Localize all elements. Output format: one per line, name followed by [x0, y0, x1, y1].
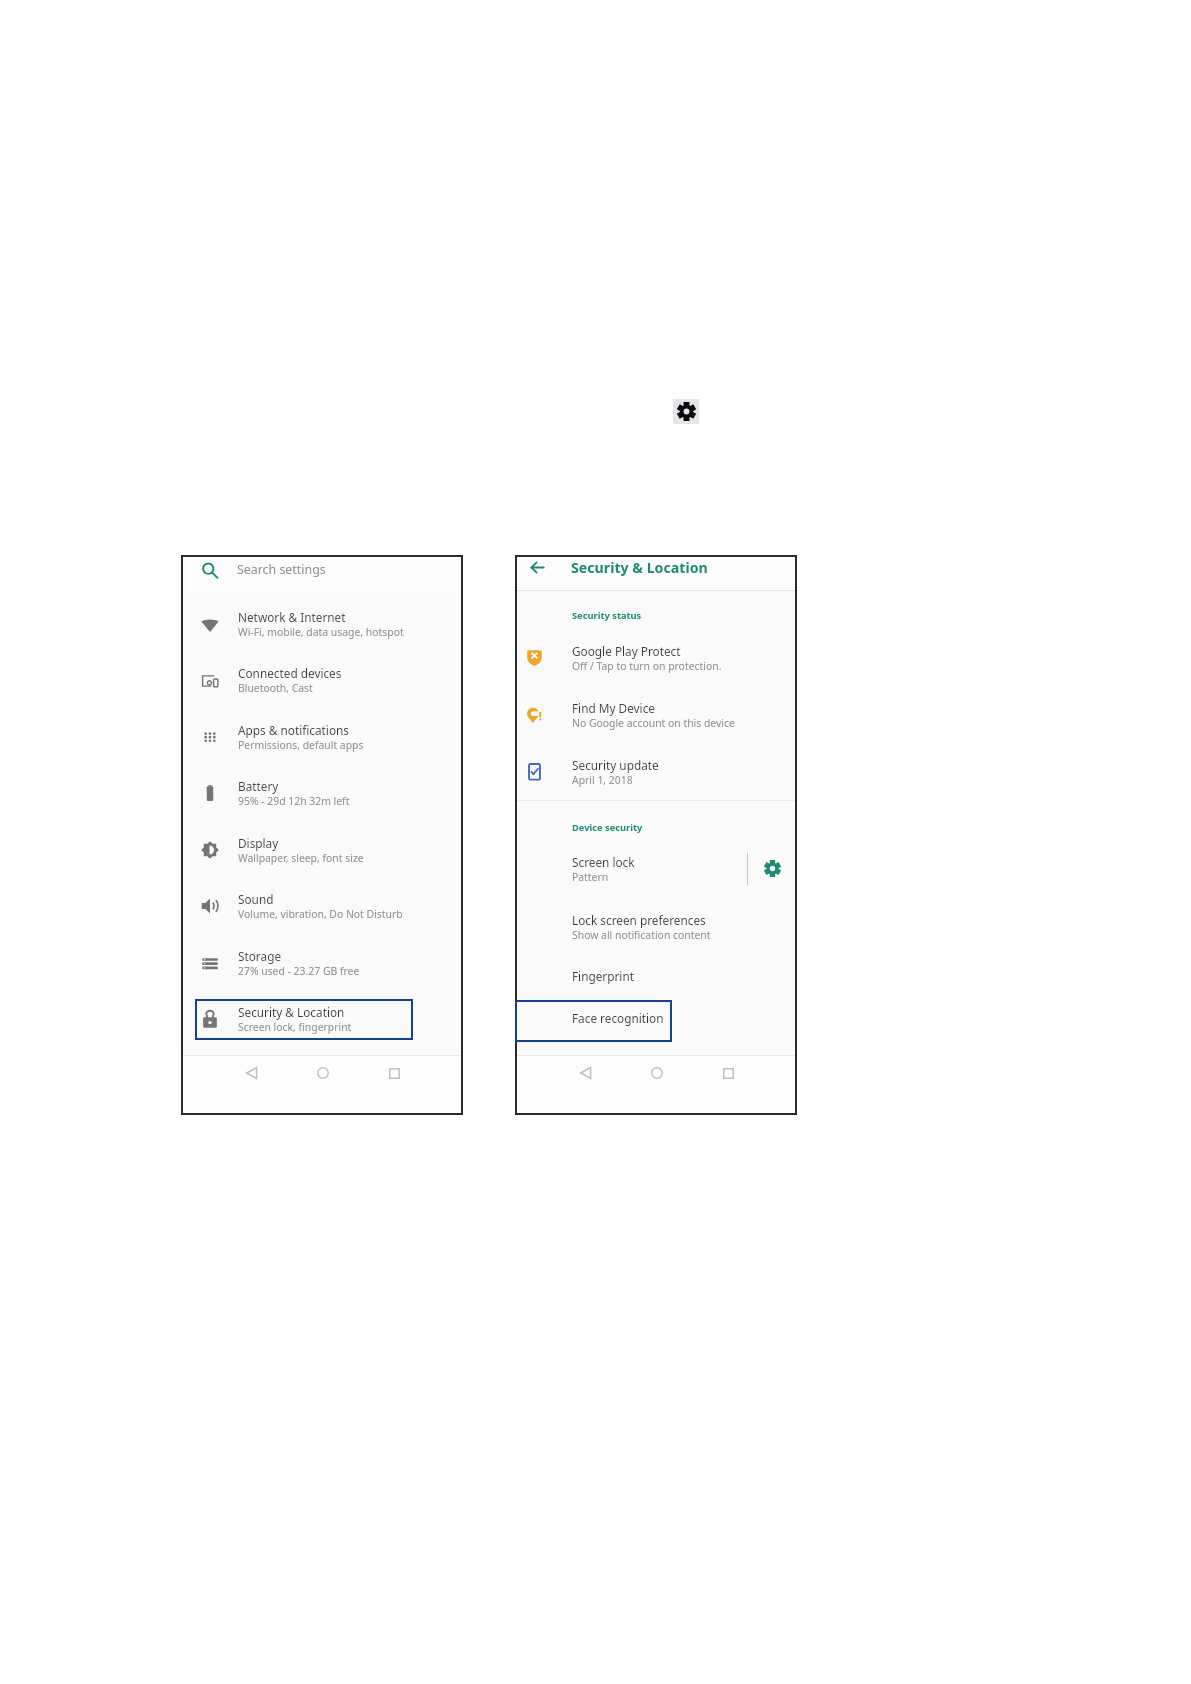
button[interactable]: Security update: [515, 743, 797, 800]
button[interactable]: Face recognition: [515, 996, 797, 1039]
button[interactable]: Settings: [673, 399, 699, 424]
button[interactable]: Screen lock settings: [748, 840, 797, 897]
button[interactable]: Home: [310, 1060, 336, 1086]
staticText: Pattern: [572, 870, 609, 884]
staticText: Fingerprint: [572, 968, 634, 984]
staticText: Security & Location: [571, 558, 708, 577]
staticText: Find My Device: [572, 700, 655, 716]
staticText: Screen lock, fingerprint: [238, 1020, 352, 1034]
staticText: Security & Location: [238, 1004, 345, 1020]
button[interactable]: Home: [644, 1060, 670, 1086]
button[interactable]: Screen lock: [515, 840, 747, 897]
staticText: Volume, vibration, Do Not Disturb: [238, 907, 403, 921]
button[interactable]: Apps & notifications: [181, 708, 463, 765]
staticText: Screen lock: [572, 854, 635, 870]
button[interactable]: Recents: [715, 1060, 741, 1086]
button[interactable]: Find My Device: [515, 686, 797, 743]
staticText: Security status: [572, 609, 642, 622]
staticText: Search settings: [237, 561, 326, 578]
button[interactable]: Search settings: [188, 555, 456, 591]
staticText: Storage: [238, 948, 282, 964]
button[interactable]: Recents: [381, 1060, 407, 1086]
staticText: Permissions, default apps: [238, 738, 364, 752]
staticText: 27% used - 23.27 GB free: [238, 964, 360, 978]
staticText: Network & Internet: [238, 609, 346, 625]
staticText: Off / Tap to turn on protection.: [572, 659, 722, 673]
button[interactable]: Security & Location: [181, 990, 463, 1047]
button[interactable]: Display: [181, 821, 463, 878]
button[interactable]: Back: [515, 555, 559, 580]
button[interactable]: Battery: [181, 764, 463, 821]
staticText: April 1, 2018: [572, 773, 633, 787]
button[interactable]: Sound: [181, 877, 463, 934]
staticText: Security update: [572, 757, 659, 773]
staticText: Bluetooth, Cast: [238, 681, 313, 695]
staticText: No Google account on this device: [572, 716, 735, 730]
staticText: Connected devices: [238, 665, 342, 681]
staticText: Display: [238, 835, 279, 851]
staticText: Face recognition: [572, 1010, 664, 1026]
button[interactable]: Connected devices: [181, 651, 463, 708]
staticText: Sound: [238, 891, 274, 907]
button[interactable]: Storage: [181, 934, 463, 991]
button[interactable]: Lock screen preferences: [515, 898, 797, 955]
staticText: Lock screen preferences: [572, 912, 706, 928]
staticText: Google Play Protect: [572, 643, 681, 659]
button[interactable]: Back: [573, 1060, 599, 1086]
button[interactable]: Back: [239, 1060, 265, 1086]
staticText: Wi-Fi, mobile, data usage, hotspot: [238, 625, 404, 639]
staticText: Battery: [238, 778, 279, 794]
staticText: Wallpaper, sleep, font size: [238, 851, 364, 865]
staticText: Show all notification content: [572, 928, 711, 942]
button[interactable]: Fingerprint: [515, 955, 797, 997]
staticText: Device security: [572, 821, 643, 834]
staticText: 95% - 29d 12h 32m left: [238, 794, 350, 808]
button[interactable]: Google Play Protect: [515, 629, 797, 686]
button[interactable]: Network & Internet: [181, 595, 463, 652]
staticText: Apps & notifications: [238, 722, 349, 738]
